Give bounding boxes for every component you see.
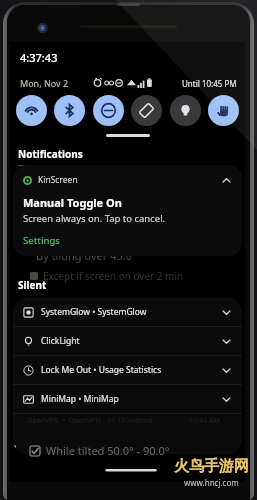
button[interactable]: Flashlight <box>170 95 201 126</box>
staticText: Mon, Nov 2 <box>20 77 69 89</box>
button[interactable]: SystemGlow • SystemGlow <box>13 298 242 326</box>
staticText: MiniMap • MiniMap <box>41 393 218 405</box>
staticText: 4:37:43 <box>20 50 58 65</box>
staticText: 火鸟手游网 <box>174 457 249 476</box>
staticText: Notifications <box>18 147 83 161</box>
button[interactable]: Wi-Fi <box>16 95 47 126</box>
staticText: SystemGlow • SystemGlow <box>41 306 218 318</box>
staticText: By tilting over 45.0° <box>36 248 137 263</box>
button[interactable]: Settings <box>23 234 60 247</box>
button[interactable]: Expand <box>218 391 234 407</box>
staticText: Turn screen on... <box>18 160 121 178</box>
button[interactable]: Auto rotate <box>131 95 162 126</box>
staticText: Settings <box>23 234 60 247</box>
button[interactable]: KinScreen <box>13 165 242 256</box>
staticText: www.hncj.com <box>184 477 239 488</box>
button[interactable]: ClickLight <box>13 327 242 355</box>
button[interactable]: Gestures <box>208 95 239 126</box>
staticText: ClickLight <box>41 335 218 347</box>
staticText: Silent <box>18 278 47 292</box>
staticText: KinScreen <box>38 174 78 186</box>
staticText: Except if screen on over 2 min <box>43 269 184 283</box>
button[interactable]: Collapse <box>218 172 234 188</box>
staticText: Until 10:45 PM <box>182 78 237 89</box>
button[interactable]: Expand <box>218 333 234 349</box>
button[interactable]: Do Not Disturb <box>93 95 124 126</box>
staticText: Lock Me Out • Usage Statistics <box>41 364 218 376</box>
button[interactable]: Expand <box>218 304 234 320</box>
staticText: Except if screen on over 2 min <box>43 228 184 242</box>
button[interactable]: Lock Me Out • Usage Statistics <box>13 356 242 384</box>
button[interactable]: Bluetooth <box>54 95 85 126</box>
staticText: By uncovering proximity sensor <box>43 182 192 196</box>
button[interactable]: Expand <box>218 362 234 378</box>
button[interactable]: MiniMap • MiniMap <box>13 385 242 413</box>
staticText: Manual Toggle On <box>23 195 122 210</box>
staticText: Screen always on. Tap to cancel. <box>23 212 166 225</box>
staticText: While tilted 50.0° - 90.0° <box>46 443 170 458</box>
staticText: OpenVPN • OpenVPN v1.17 android 10:44 AM <box>27 416 220 426</box>
